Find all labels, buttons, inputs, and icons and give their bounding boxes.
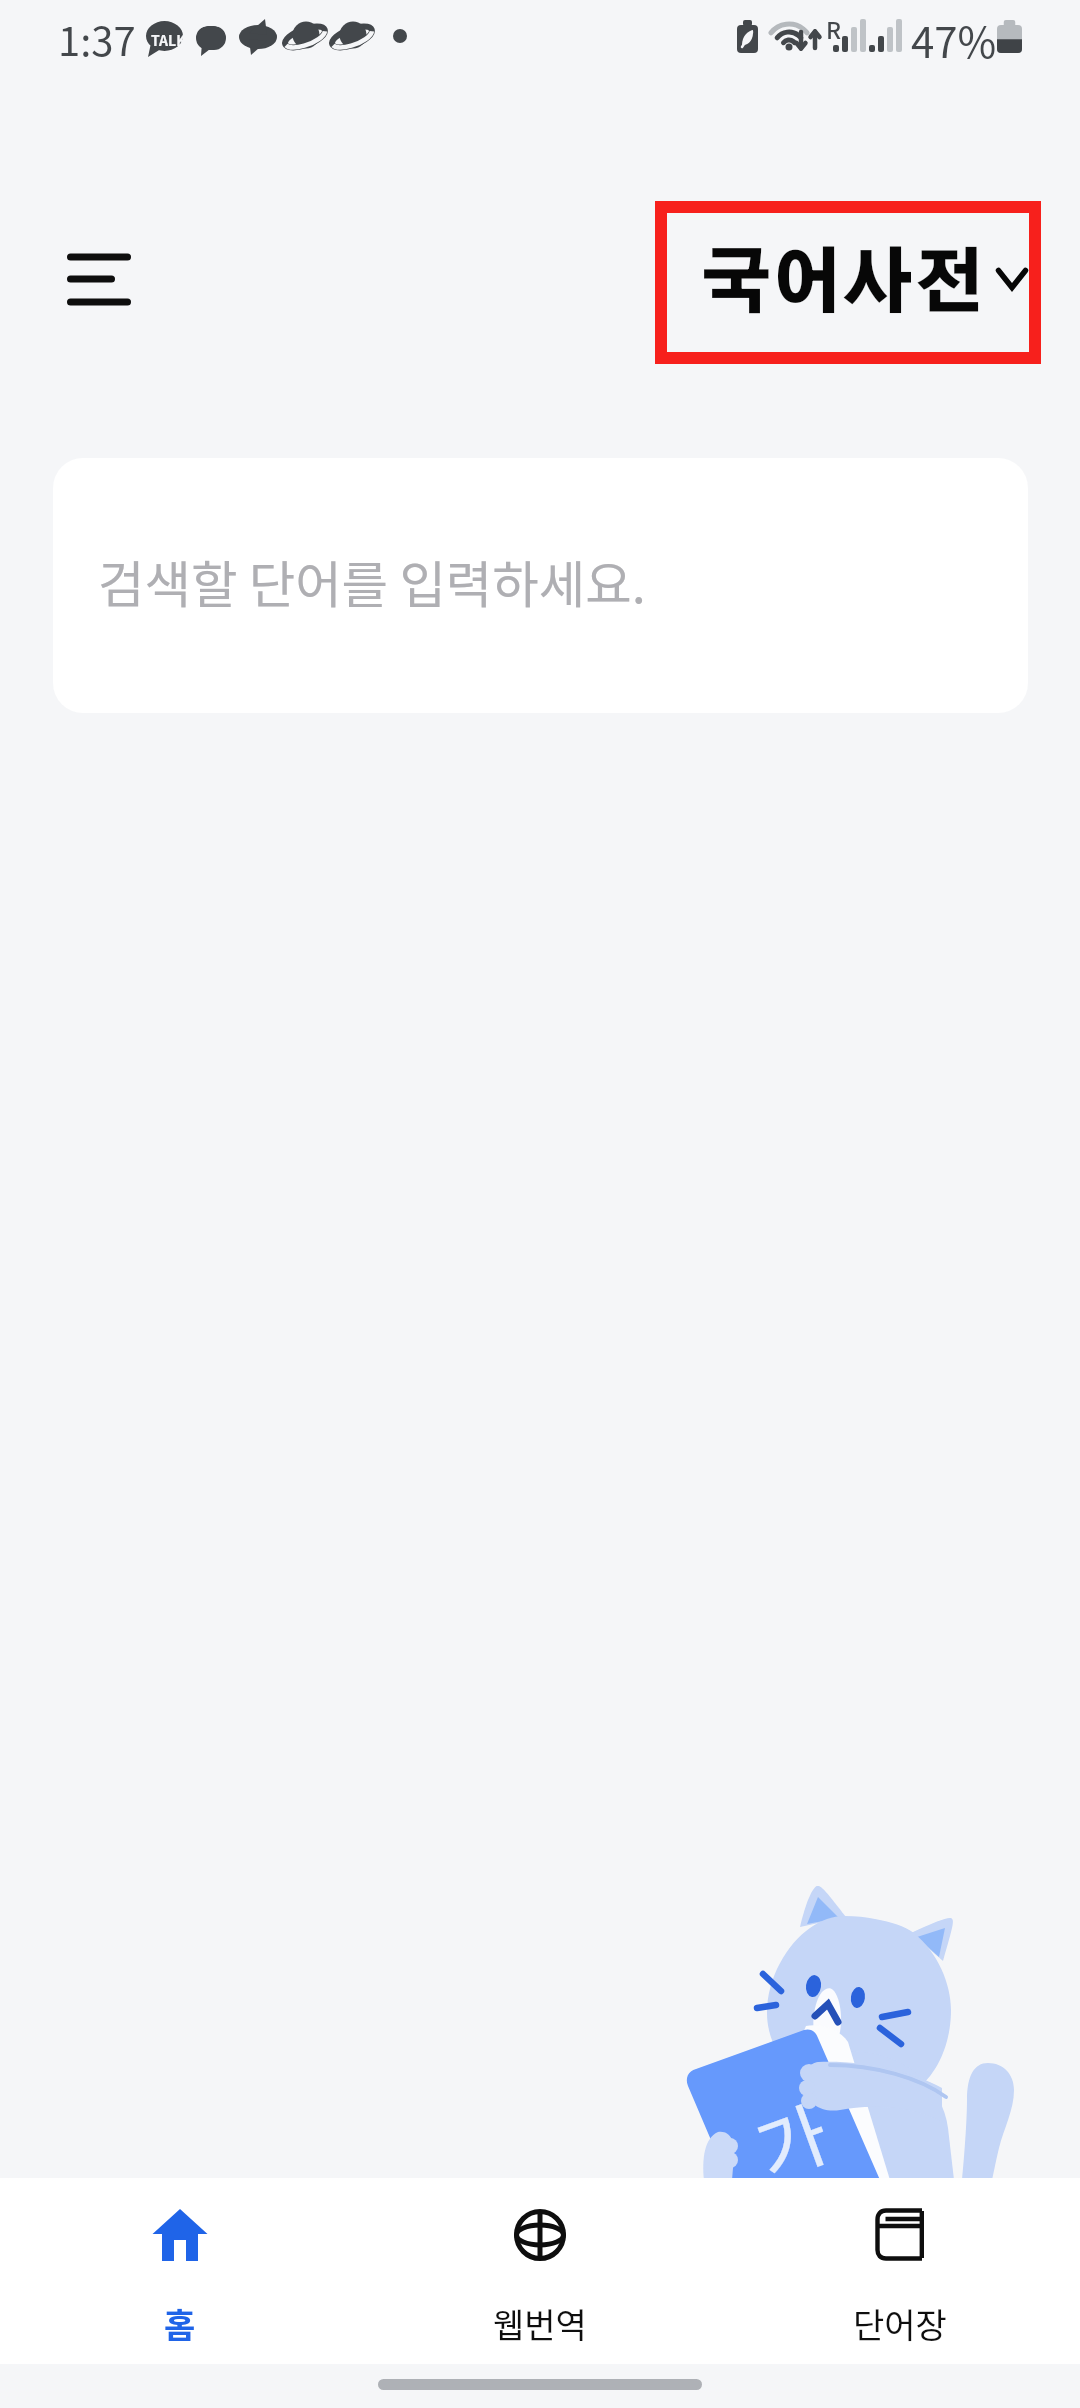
button[interactable]: 단어장 xyxy=(720,2178,1080,2350)
staticText: 홈 xyxy=(164,2299,196,2348)
staticText: 47% xyxy=(911,9,997,70)
button[interactable]: 웹번역 xyxy=(360,2178,720,2350)
button[interactable]: 검색할 단어를 입력하세요. xyxy=(53,458,1028,713)
staticText: 단어장 xyxy=(853,2299,947,2348)
button[interactable]: 홈 xyxy=(0,2178,360,2350)
staticText: 1:37 xyxy=(58,10,136,68)
staticText: R xyxy=(826,12,842,45)
staticText: 웹번역 xyxy=(493,2299,587,2348)
staticText: 검색할 단어를 입력하세요. xyxy=(98,544,646,617)
staticText: 국어사전 xyxy=(701,252,985,322)
staticText: 가 xyxy=(740,2076,836,2184)
button[interactable]: Menu xyxy=(40,229,160,333)
staticText: TALK xyxy=(151,30,186,50)
button[interactable]: 국어사전 xyxy=(655,201,1041,364)
